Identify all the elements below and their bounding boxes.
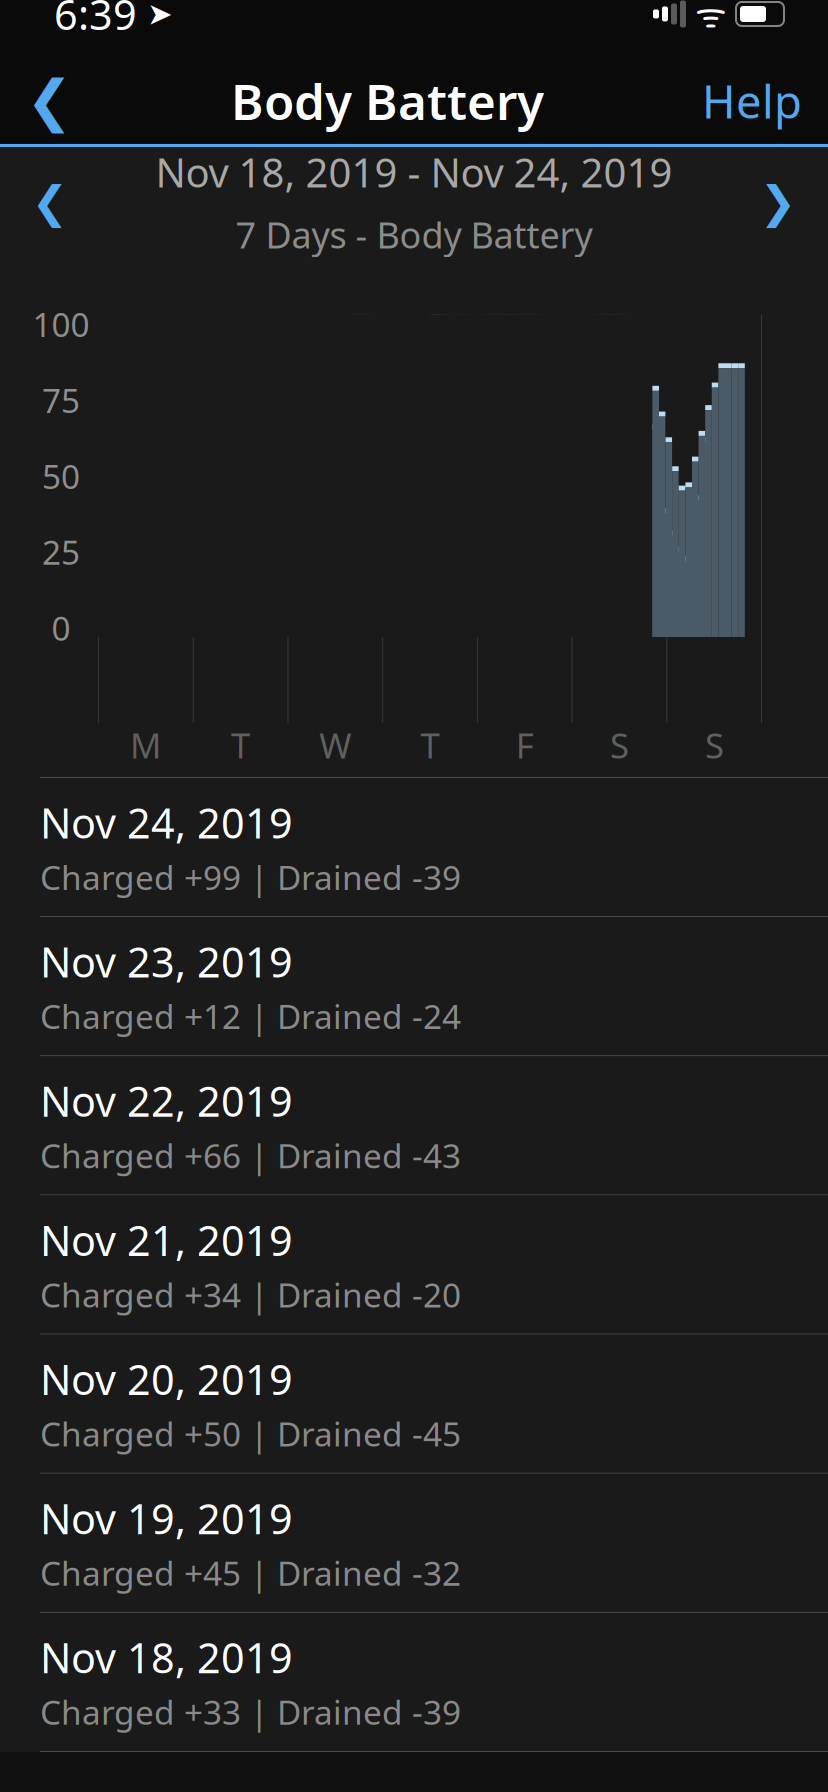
staticText: Charged +99 | Drained -39: [40, 855, 461, 899]
staticText: ➤: [137, 0, 173, 31]
staticText: Body Battery: [231, 68, 544, 134]
staticText: Charged +34 | Drained -20: [40, 1272, 461, 1317]
staticText: W: [319, 722, 351, 768]
staticText: Nov 18, 2019: [40, 1630, 293, 1685]
staticText: Nov 23, 2019: [40, 934, 293, 989]
staticText: S: [705, 722, 724, 768]
staticText: T: [231, 722, 250, 768]
button[interactable]: Nov 20, 2019: [0, 1335, 828, 1474]
staticText: Nov 20, 2019: [40, 1352, 293, 1406]
staticText: 25: [42, 530, 80, 574]
button[interactable]: Nov 21, 2019: [0, 1195, 828, 1335]
staticText: ❯: [759, 177, 796, 227]
staticText: Nov 18, 2019 - Nov 24, 2019: [155, 145, 672, 199]
staticText: Nov 21, 2019: [40, 1212, 293, 1267]
staticText: F: [516, 722, 534, 768]
staticText: 0: [51, 606, 70, 650]
staticText: Charged +12 | Drained -24: [40, 994, 461, 1038]
staticText: ᯤ: [686, 0, 736, 37]
button[interactable]: Nov 23, 2019: [0, 917, 828, 1056]
staticText: 50: [42, 454, 80, 498]
button[interactable]: Nov 24, 2019: [0, 778, 828, 917]
button[interactable]: Nov 18, 2019: [0, 1613, 828, 1752]
staticText: S: [610, 722, 629, 768]
staticText: ❮: [31, 177, 68, 227]
staticText: Charged +66 | Drained -43: [40, 1133, 461, 1177]
staticText: 100: [32, 302, 89, 346]
staticText: Nov 22, 2019: [40, 1073, 293, 1128]
staticText: Charged +33 | Drained -39: [40, 1690, 461, 1734]
staticText: 6:39: [54, 0, 137, 41]
button[interactable]: Nov 19, 2019: [0, 1474, 828, 1613]
staticText: M: [130, 722, 161, 768]
button[interactable]: Back: [0, 58, 99, 144]
staticText: ❮: [26, 69, 73, 133]
staticText: Help: [702, 71, 802, 131]
staticText: T: [420, 722, 439, 768]
staticText: 7 Days - Body Battery: [235, 211, 592, 258]
staticText: Charged +45 | Drained -32: [40, 1551, 461, 1595]
button[interactable]: Help: [676, 58, 828, 144]
button[interactable]: Nov 22, 2019: [0, 1056, 828, 1195]
staticText: Nov 24, 2019: [40, 795, 293, 850]
staticText: Nov 19, 2019: [40, 1491, 293, 1546]
button[interactable]: Next week: [738, 154, 818, 250]
staticText: Charged +50 | Drained -45: [40, 1411, 461, 1456]
staticText: 75: [42, 378, 80, 422]
button[interactable]: Previous week: [10, 154, 90, 250]
